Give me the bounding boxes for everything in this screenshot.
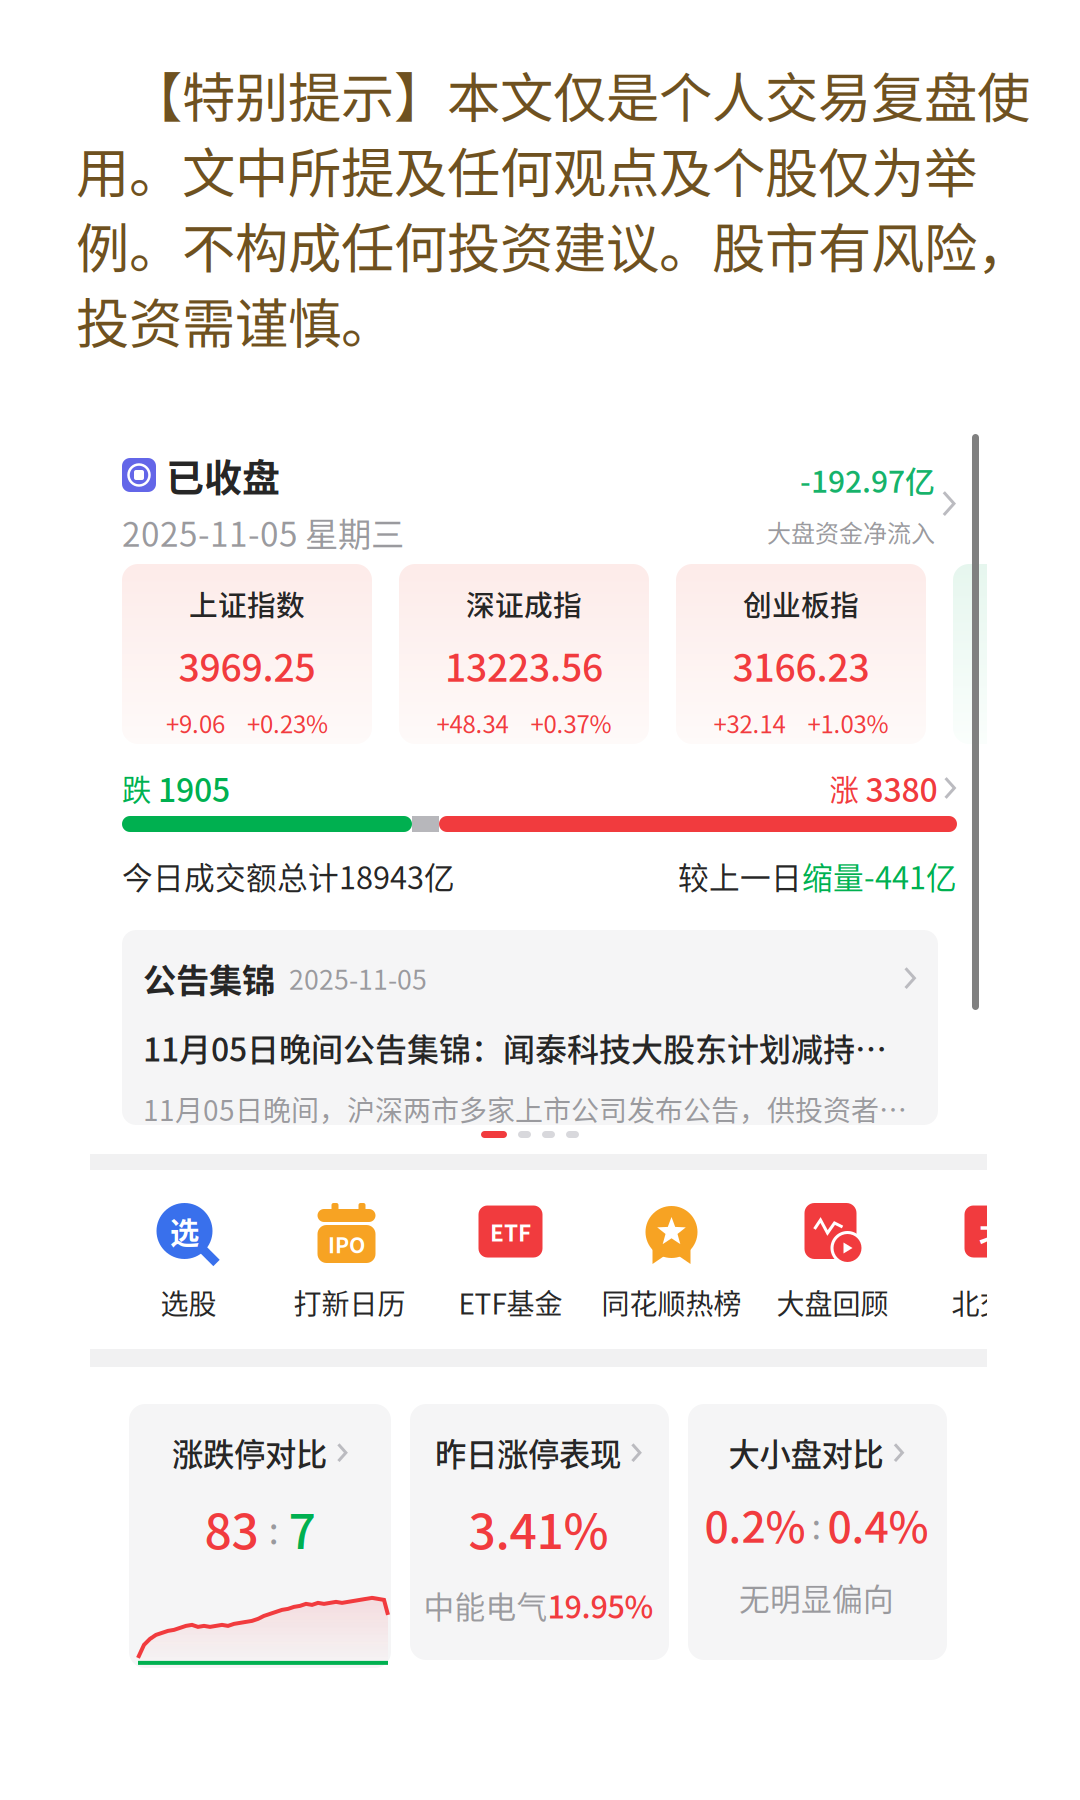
button[interactable]: 选	[108, 1203, 269, 1322]
button[interactable]: 大小盘对比	[688, 1404, 947, 1660]
staticText: :	[811, 1499, 821, 1549]
button[interactable]: 涨跌停对比	[129, 1404, 391, 1668]
staticText: 0.2%	[704, 1493, 805, 1555]
staticText: 3.41%	[468, 1493, 608, 1563]
staticText: 2025-11-05 星期三	[122, 508, 404, 556]
staticText: 11月05日晚间公告集锦：闻泰科技大股东计划减持不超过3...	[143, 1024, 917, 1071]
staticText: 今日成交额总计18943亿	[122, 854, 455, 898]
staticText: +9.06	[166, 705, 225, 740]
staticText: ETF基金	[458, 1282, 562, 1322]
staticText: +48.34	[436, 705, 508, 740]
staticText: 已收盘	[166, 447, 280, 502]
staticText: :	[268, 1501, 278, 1555]
staticText: +32.14	[713, 705, 785, 740]
staticText: -192.97亿	[800, 458, 935, 501]
staticText: 3969.25	[178, 638, 315, 692]
staticText: 11月05日晚间，沪深两市多家上市公司发布公告，供投资者参考：重...	[143, 1089, 917, 1129]
staticText: 7	[288, 1493, 315, 1563]
staticText: +0.23%	[247, 705, 328, 740]
staticText: 13223.56	[445, 638, 603, 692]
staticText: 选股	[160, 1282, 216, 1322]
staticText: 打新日历	[293, 1282, 405, 1322]
staticText: 涨跌停对比	[172, 1430, 327, 1475]
staticText: 同花顺热榜	[601, 1282, 741, 1322]
button[interactable]: IPO	[269, 1203, 430, 1322]
staticText: 中能电气	[423, 1583, 547, 1627]
staticText: 0.4%	[827, 1493, 928, 1555]
staticText: 无明显偏向	[739, 1575, 894, 1620]
staticText: 深证成指	[466, 583, 582, 624]
button[interactable]: 北	[913, 1203, 1074, 1322]
staticText: 北交所	[951, 1282, 1035, 1322]
staticText: ETF	[490, 1215, 531, 1248]
staticText: +1.03%	[807, 705, 888, 740]
button[interactable]: 公告集锦	[122, 930, 938, 1125]
staticText: 创业板指	[743, 583, 859, 624]
staticText: 涨	[829, 767, 858, 809]
staticText: 较上一日	[678, 854, 802, 898]
button[interactable]: 深证成指	[399, 564, 649, 744]
staticText: 跌	[122, 767, 151, 809]
staticText: 3166.23	[732, 638, 869, 692]
button[interactable]: 科创50	[953, 564, 1080, 744]
staticText: 上证指数	[189, 583, 305, 624]
staticText: 1905	[151, 765, 230, 811]
staticText: 公告集锦	[143, 954, 275, 1002]
staticText: 【特别提示】本文仅是个人交易复盘使 用。文中所提及任何观点及个股仅为举 例。不构…	[76, 56, 1030, 359]
button[interactable]: 上证指数	[122, 564, 372, 744]
staticText: 昨日涨停表现	[435, 1430, 621, 1475]
button[interactable]: -192.97亿	[767, 454, 957, 549]
staticText: 3380	[858, 765, 937, 811]
staticText: 大盘回顾	[776, 1282, 888, 1322]
staticText: IPO	[328, 1229, 365, 1259]
button[interactable]: ETF	[430, 1203, 591, 1322]
button[interactable]: 同花顺热榜	[591, 1203, 752, 1322]
staticText: 2025-11-05	[289, 959, 427, 997]
staticText: +0.37%	[530, 705, 611, 740]
button[interactable]: 大盘回顾	[752, 1203, 913, 1322]
staticText: 北	[979, 1210, 1008, 1253]
staticText: 选	[170, 1210, 199, 1252]
staticText: 83	[204, 1493, 258, 1563]
staticText: 缩量-441亿	[802, 854, 957, 898]
button[interactable]: 创业板指	[676, 564, 926, 744]
staticText: 大盘资金净流入	[767, 514, 935, 549]
button[interactable]: 昨日涨停表现	[410, 1404, 669, 1660]
staticText: 19.95%	[547, 1583, 653, 1627]
staticText: 大小盘对比	[728, 1430, 883, 1475]
